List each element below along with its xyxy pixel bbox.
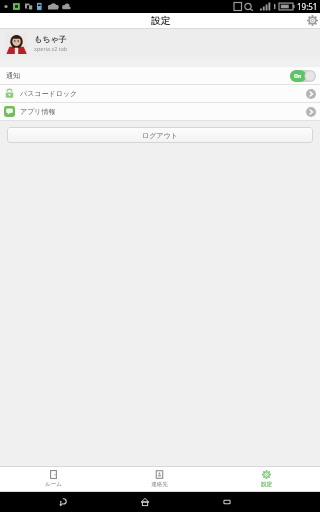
staticText: 設定 bbox=[151, 15, 170, 27]
staticText: ルーム bbox=[45, 481, 62, 488]
button[interactable]: パスコードロック bbox=[0, 85, 320, 102]
staticText: もちゃ子 bbox=[34, 34, 67, 44]
staticText: パスコードロック bbox=[20, 89, 78, 98]
staticText: 通知 bbox=[6, 71, 20, 80]
button[interactable]: ログアウト bbox=[7, 127, 313, 143]
button[interactable]: もちゃ子 bbox=[0, 29, 320, 57]
button[interactable]: Settings bbox=[305, 13, 320, 28]
button[interactable]: 通知 bbox=[0, 67, 320, 84]
button[interactable]: Back bbox=[53, 492, 73, 512]
button[interactable]: アプリ情報 bbox=[0, 103, 320, 120]
staticText: ログアウト bbox=[142, 131, 178, 140]
button[interactable]: 連絡先 bbox=[106, 467, 213, 491]
button[interactable]: Home bbox=[135, 492, 155, 512]
staticText: xperia z2 tab bbox=[34, 45, 68, 52]
staticText: 連絡先 bbox=[151, 481, 168, 488]
staticText: アプリ情報 bbox=[20, 107, 56, 116]
staticText: 設定 bbox=[261, 481, 272, 488]
button[interactable]: 設定 bbox=[213, 467, 320, 491]
staticText: On bbox=[294, 73, 302, 80]
button[interactable]: Recent apps bbox=[217, 492, 237, 512]
staticText: 19:51 bbox=[297, 1, 318, 12]
button[interactable]: ルーム bbox=[0, 467, 106, 491]
button[interactable]: Notifications on bbox=[290, 70, 316, 82]
